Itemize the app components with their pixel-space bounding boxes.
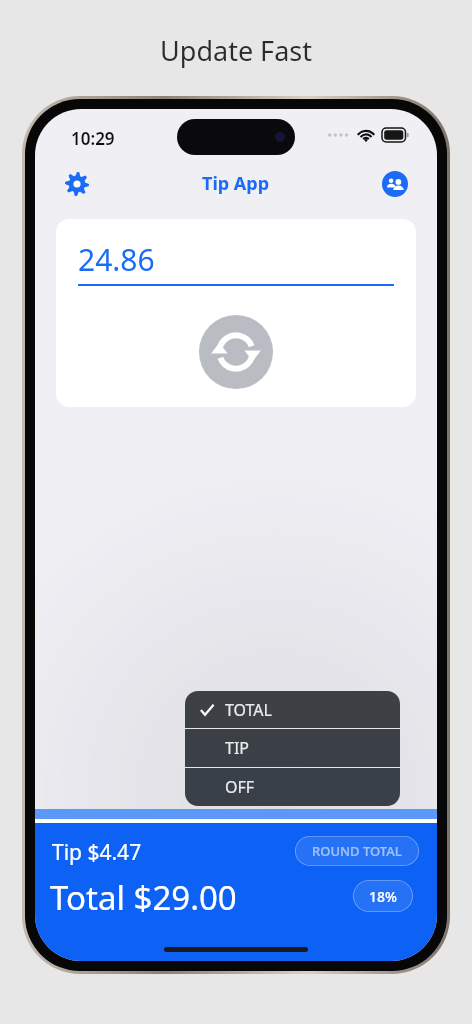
staticText: TOTAL	[225, 699, 272, 721]
button[interactable]: 18%	[353, 880, 413, 912]
staticText: 10:29	[71, 127, 115, 150]
staticText: 18%	[369, 887, 397, 906]
staticText: Update Fast	[0, 32, 472, 69]
staticText: 24.86	[78, 239, 155, 280]
button[interactable]: TIP	[185, 729, 400, 767]
staticText: OFF	[225, 776, 255, 798]
button[interactable]: ROUND TOTAL	[295, 836, 419, 866]
button[interactable]: Refresh	[199, 315, 273, 389]
button[interactable]: TOTAL	[185, 691, 400, 728]
staticText: TIP	[225, 737, 250, 759]
staticText: ROUND TOTAL	[312, 842, 402, 860]
button[interactable]: Split with people	[374, 163, 416, 205]
button[interactable]: Settings	[56, 163, 98, 205]
button[interactable]: OFF	[185, 768, 400, 806]
staticText: Tip App	[202, 171, 270, 196]
button[interactable]: Tip $4.47	[35, 823, 437, 961]
staticText: Total $29.00	[50, 875, 237, 920]
staticText: Tip $4.47	[52, 838, 142, 867]
